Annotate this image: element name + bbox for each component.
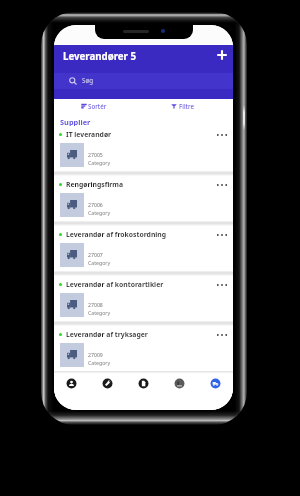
button[interactable]: Filtre: [171, 101, 195, 111]
staticText: 27007: [88, 251, 103, 258]
button[interactable]: More options: [215, 128, 228, 141]
button[interactable]: Søg: [54, 73, 233, 89]
staticText: 27005: [88, 151, 103, 158]
staticText: Category: [88, 359, 111, 366]
button[interactable]: More options: [215, 178, 228, 191]
staticText: 27009: [88, 351, 103, 358]
button[interactable]: Add supplier: [214, 47, 229, 62]
staticText: Category: [88, 259, 111, 266]
button[interactable]: Suppliers: [197, 373, 233, 394]
button[interactable]: More options: [215, 228, 228, 241]
button[interactable]: Contacts: [54, 373, 89, 394]
staticText: IT leverandør: [66, 130, 112, 139]
staticText: Supplier: [60, 117, 91, 126]
staticText: Leverandør af kontorartikler: [66, 280, 164, 289]
button[interactable]: More options: [215, 278, 228, 291]
button[interactable]: More options: [215, 328, 228, 341]
button[interactable]: Company: [161, 373, 197, 394]
button[interactable]: Sortér: [81, 101, 107, 111]
staticText: Leverandør af tryksager: [66, 330, 148, 339]
staticText: Søg: [82, 76, 93, 84]
button[interactable]: Rengøringsfirma: [54, 176, 233, 221]
button[interactable]: IT leverandør: [54, 126, 233, 171]
staticText: Category: [88, 159, 111, 166]
button[interactable]: Service: [89, 373, 125, 394]
staticText: 27006: [88, 201, 103, 208]
button[interactable]: Documents: [125, 373, 161, 394]
button[interactable]: Leverandør af tryksager: [54, 326, 233, 371]
staticText: Leverandør af frokostordning: [66, 230, 167, 239]
staticText: Rengøringsfirma: [66, 180, 124, 189]
button[interactable]: Leverandør af frokostordning: [54, 226, 233, 271]
staticText: Leverandører 5: [63, 50, 136, 63]
button[interactable]: Leverandør af kontorartikler: [54, 276, 233, 321]
staticText: Filtre: [179, 102, 195, 110]
staticText: Category: [88, 309, 111, 316]
staticText: Sortér: [88, 102, 107, 110]
staticText: Category: [88, 209, 111, 216]
staticText: 27008: [88, 301, 103, 308]
